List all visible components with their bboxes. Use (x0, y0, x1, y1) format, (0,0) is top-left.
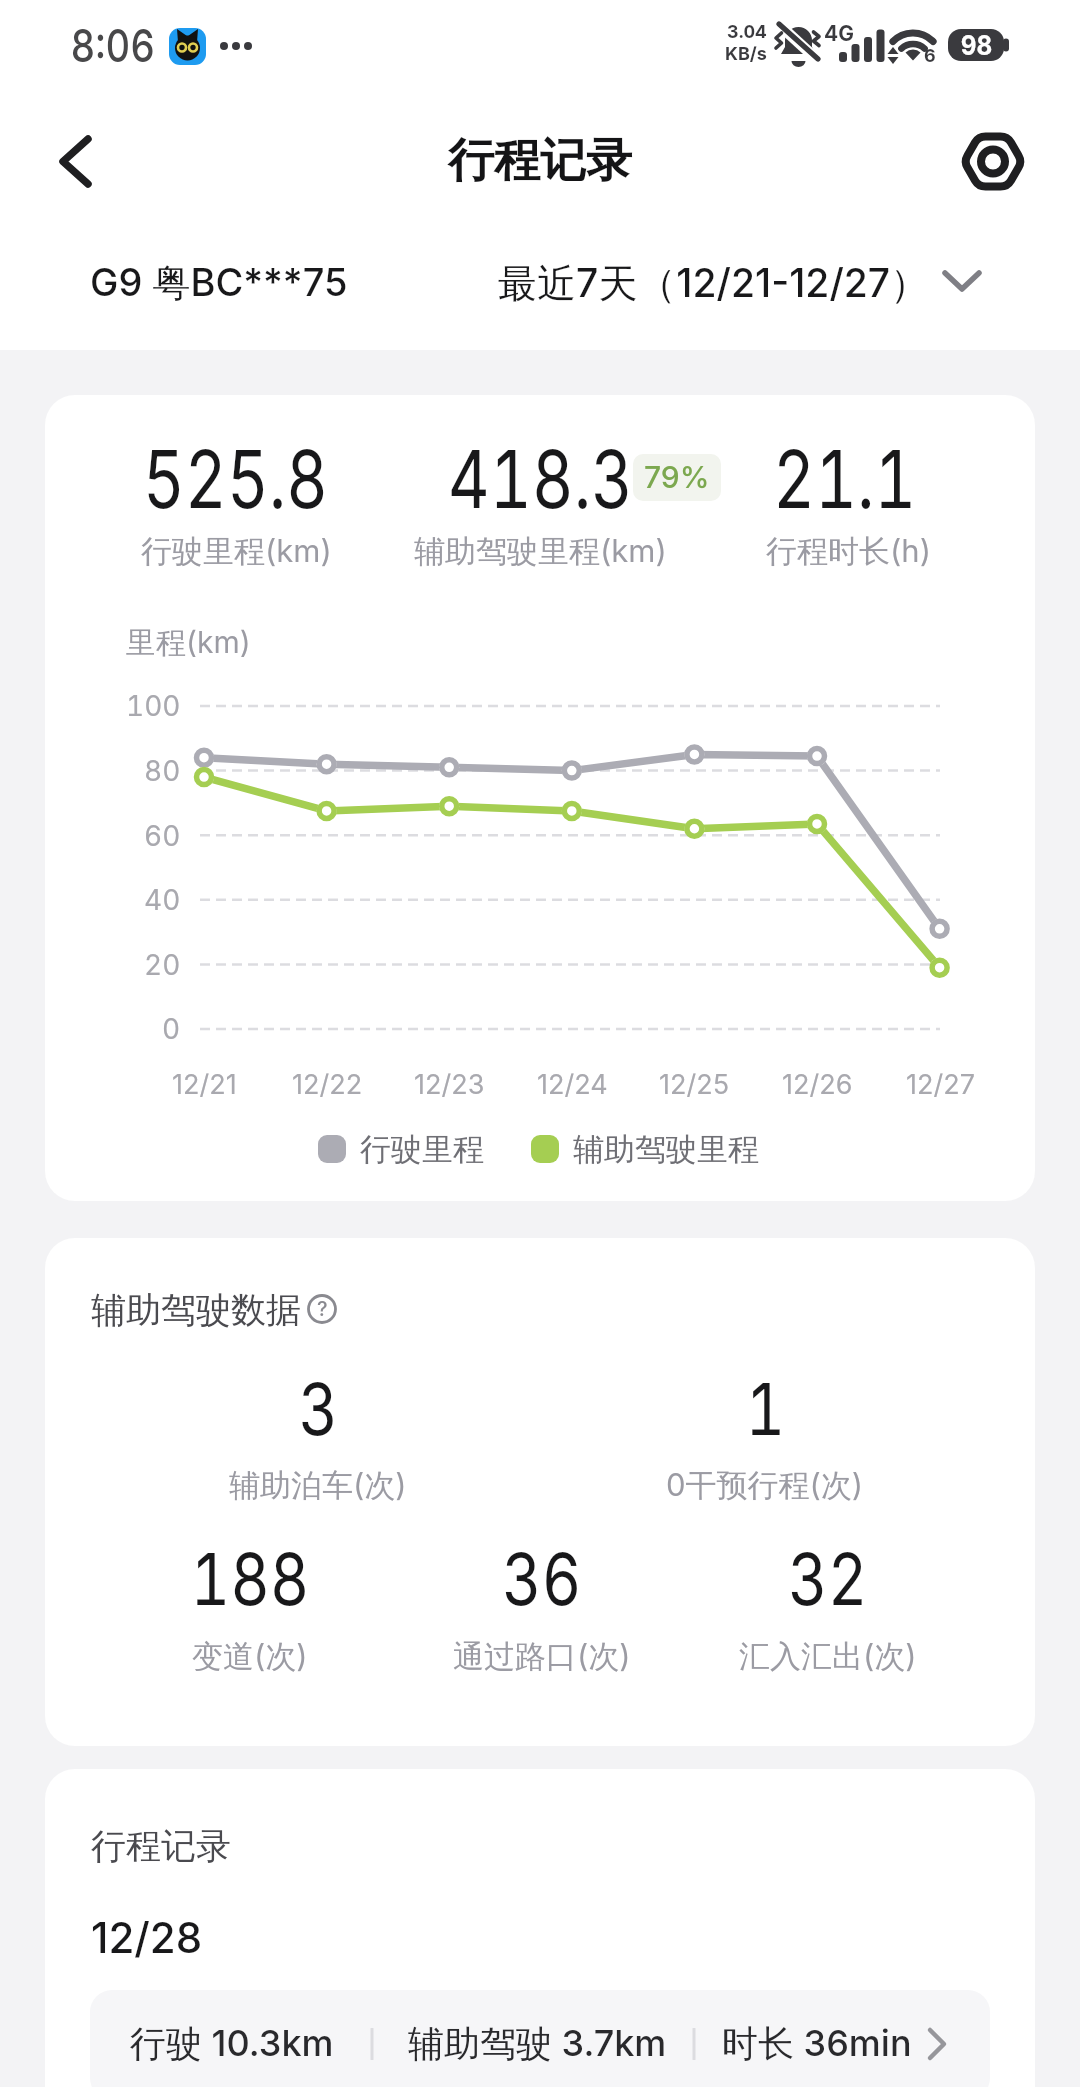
staticText: 12/21 (172, 1068, 237, 1101)
staticText: 80 (144, 754, 181, 788)
button[interactable] (950, 120, 1036, 204)
staticText: 行程记录 (448, 132, 632, 190)
staticText: 行驶里程 (360, 1130, 484, 1169)
staticText: G9 粤BC***75 (90, 259, 348, 307)
staticText: 12/25 (659, 1068, 730, 1101)
staticText: 12/24 (537, 1068, 608, 1101)
staticText: 行程记录 (91, 1824, 231, 1868)
staticText: 6 (924, 45, 936, 67)
staticText: 汇入汇出(次) (739, 1637, 917, 1676)
staticText: 418.3 (448, 430, 633, 527)
staticText: 3 (298, 1365, 338, 1452)
staticText: 20 (144, 948, 181, 982)
staticText: 行驶里程(km) (141, 532, 332, 571)
button[interactable] (80, 245, 370, 321)
staticText: 12/26 (782, 1068, 853, 1101)
staticText: 188 (190, 1535, 310, 1622)
staticText: 525.8 (143, 430, 328, 527)
staticText: 辅助驾驶数据 (91, 1288, 301, 1332)
staticText: 12/28 (91, 1912, 203, 1963)
staticText: 60 (144, 819, 181, 853)
staticText: 79% (644, 459, 710, 495)
staticText: 8:06 (70, 18, 155, 72)
staticText: 3.04 (727, 21, 767, 43)
staticText: 辅助泊车(次) (229, 1466, 407, 1505)
staticText: 行驶 10.3km (130, 2021, 334, 2067)
staticText: 12/22 (292, 1068, 363, 1101)
staticText: 通过路口(次) (453, 1637, 631, 1676)
staticText: 1 (745, 1365, 785, 1452)
staticText: 里程(km) (126, 624, 251, 662)
staticText: 行程时长(h) (766, 532, 931, 571)
staticText: 21.1 (773, 430, 917, 527)
button[interactable] (300, 1288, 345, 1333)
staticText: 12/23 (414, 1068, 485, 1101)
staticText: 0 (162, 1012, 181, 1046)
staticText: 12/27 (906, 1068, 975, 1101)
staticText: 40 (144, 883, 181, 917)
staticText: 32 (788, 1535, 868, 1622)
staticText: KB/s (725, 43, 767, 65)
staticText: 100 (126, 689, 181, 723)
staticText: 时长 36min (722, 2021, 912, 2067)
button[interactable] (490, 245, 990, 321)
staticText: 辅助驾驶里程(km) (414, 532, 667, 571)
button[interactable] (90, 1990, 990, 2087)
staticText: 辅助驾驶里程 (573, 1130, 759, 1169)
staticText: ? (317, 1297, 328, 1321)
staticText: 辅助驾驶 3.7km (408, 2021, 667, 2067)
staticText: 4G (824, 21, 854, 46)
staticText: 变道(次) (192, 1637, 308, 1676)
staticText: 0干预行程(次) (666, 1466, 864, 1505)
staticText: 最近7天（12/21-12/27） (498, 259, 930, 308)
staticText: 36 (502, 1535, 582, 1622)
button[interactable] (40, 120, 110, 202)
staticText: 98 (961, 29, 992, 62)
